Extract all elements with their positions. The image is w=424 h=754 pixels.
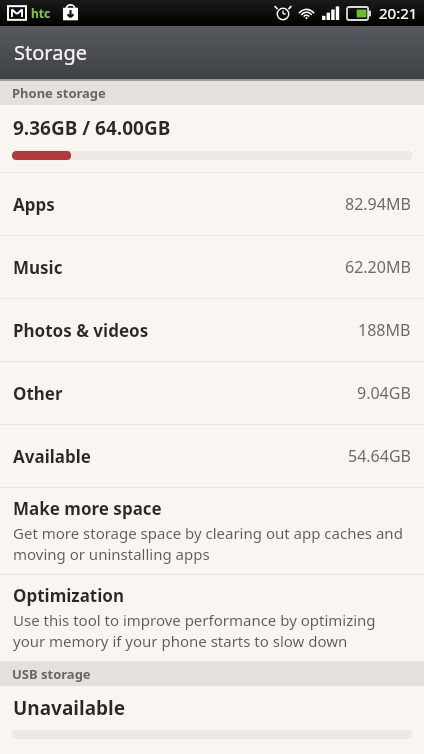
staticText: Apps — [13, 193, 55, 216]
staticText: Music — [13, 256, 63, 279]
staticText: 20:21 — [379, 3, 418, 23]
button[interactable]: Available — [0, 425, 424, 488]
staticText: 62.20MB — [345, 256, 411, 278]
staticText: htc — [31, 5, 51, 21]
staticText: Unavailable — [13, 695, 126, 721]
button[interactable]: Music — [0, 236, 424, 299]
staticText: Optimization — [13, 584, 125, 607]
button[interactable]: Apps — [0, 173, 424, 236]
staticText: Photos & videos — [13, 319, 149, 342]
staticText: Get more storage space by clearing out a… — [13, 523, 411, 565]
staticText: 188MB — [358, 319, 411, 341]
button[interactable]: Other — [0, 362, 424, 425]
staticText: 54.64GB — [348, 445, 411, 467]
button[interactable]: Photos & videos — [0, 299, 424, 362]
staticText: 9.36GB / 64.00GB — [13, 115, 171, 141]
staticText: Make more space — [13, 497, 162, 520]
staticText: Use this tool to improve performance by … — [13, 610, 411, 652]
staticText: Storage — [14, 39, 87, 66]
staticText: 9.04GB — [357, 382, 411, 404]
staticText: Available — [13, 445, 91, 468]
staticText: Other — [13, 382, 63, 405]
staticText: 82.94MB — [345, 193, 411, 215]
staticText: USB storage — [12, 665, 91, 683]
button[interactable]: Make more space — [0, 488, 424, 575]
staticText: Phone storage — [12, 84, 106, 102]
button[interactable]: Optimization — [0, 575, 424, 662]
